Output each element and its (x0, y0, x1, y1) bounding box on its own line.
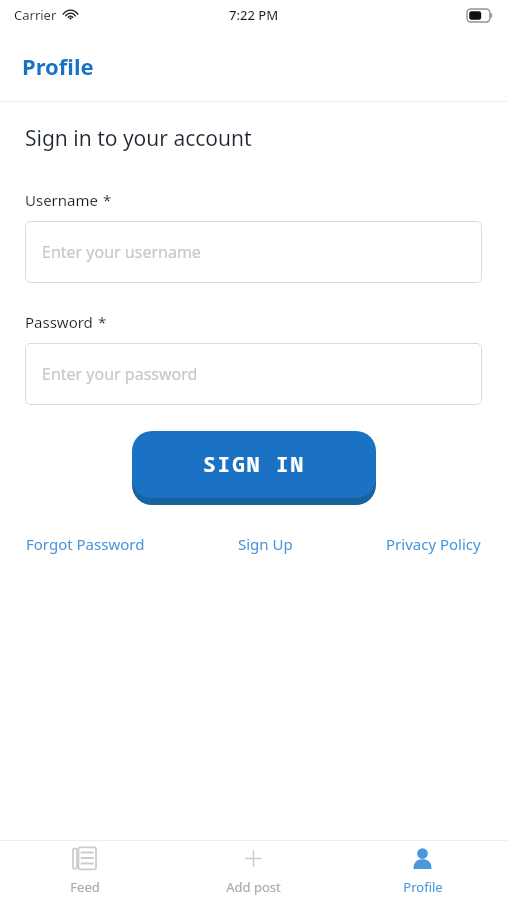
button[interactable]: Enter your password (25, 343, 482, 405)
staticText: Enter your username (42, 241, 201, 263)
staticText: 7:22 PM (229, 6, 279, 24)
staticText: Sign in to your account (25, 124, 252, 153)
staticText: SIGN IN (203, 450, 306, 479)
staticText: Carrier (14, 6, 57, 24)
button[interactable]: Forgot Password (26, 530, 145, 558)
button[interactable]: Profile (338, 841, 507, 900)
button[interactable]: Add post (169, 841, 338, 900)
button[interactable]: SIGN IN (132, 431, 376, 498)
staticText: Password (25, 312, 93, 332)
staticText: Profile (22, 51, 94, 81)
button[interactable]: Feed (0, 841, 169, 900)
staticText: Privacy Policy (386, 534, 481, 554)
button[interactable]: Privacy Policy (386, 530, 481, 558)
staticText: Forgot Password (26, 534, 145, 554)
button[interactable]: Sign Up (238, 530, 293, 558)
staticText: Feed (70, 878, 100, 896)
staticText: * (98, 312, 107, 332)
staticText: * (103, 190, 112, 210)
staticText: Add post (226, 878, 281, 896)
staticText: Enter your password (42, 363, 198, 385)
staticText: Profile (403, 878, 443, 896)
staticText: Sign Up (238, 534, 293, 554)
button[interactable]: Enter your username (25, 221, 482, 283)
staticText: Username (25, 190, 98, 210)
